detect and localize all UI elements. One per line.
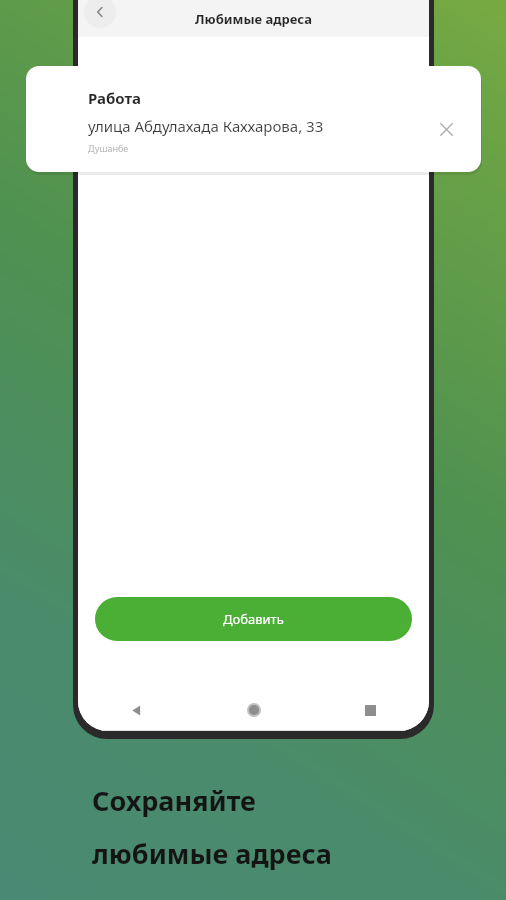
button[interactable]: Обзор: [312, 689, 429, 731]
button[interactable]: Добавить: [95, 597, 412, 641]
button[interactable]: Домой: [195, 689, 312, 731]
staticText: любимые адреса: [92, 835, 332, 872]
button[interactable]: Назад: [84, 0, 116, 28]
button[interactable]: Назад: [78, 689, 195, 731]
staticText: Душанбе: [88, 142, 129, 154]
staticText: Добавить: [223, 610, 284, 628]
staticText: Работа: [88, 88, 141, 108]
button[interactable]: Удалить: [431, 114, 461, 144]
staticText: улица Абдулахада Каххарова, 33: [88, 116, 324, 136]
staticText: Любимые адреса: [195, 10, 312, 28]
staticText: Сохраняйте: [92, 782, 256, 819]
button[interactable]: Избранное: [26, 66, 481, 172]
